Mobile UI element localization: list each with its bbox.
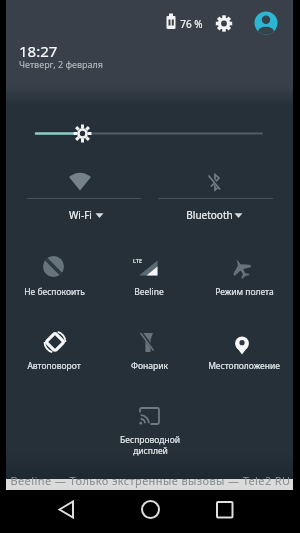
- staticText: LTE: [133, 257, 142, 264]
- staticText: Beeline: [134, 286, 164, 298]
- staticText: Режим полета: [215, 286, 274, 298]
- button[interactable]: [156, 162, 274, 224]
- button[interactable]: [197, 248, 289, 304]
- button[interactable]: [210, 8, 240, 38]
- staticText: Wi-Fi: [69, 208, 92, 222]
- staticText: Беспроводной: [120, 434, 180, 446]
- button[interactable]: [44, 494, 88, 526]
- staticText: 18:27: [19, 41, 58, 61]
- staticText: 76 %: [180, 17, 203, 31]
- staticText: Bluetooth: [186, 208, 233, 222]
- staticText: Фонарик: [131, 360, 168, 372]
- button[interactable]: [30, 118, 270, 148]
- button[interactable]: [102, 400, 194, 460]
- staticText: Не беспокоить: [24, 286, 85, 298]
- staticText: Местоположение: [208, 360, 280, 372]
- button[interactable]: [102, 325, 194, 377]
- staticText: дисплей: [133, 445, 168, 457]
- button[interactable]: [128, 494, 172, 526]
- button[interactable]: [102, 248, 194, 304]
- button[interactable]: [8, 325, 100, 377]
- button[interactable]: [25, 162, 143, 224]
- button[interactable]: [197, 325, 289, 377]
- button[interactable]: [202, 494, 246, 526]
- staticText: Четверг, 2 февраля: [19, 58, 104, 70]
- staticText: Автоповорот: [27, 360, 81, 372]
- staticText: Beeline — Только экстренные вызовы — Tel…: [10, 473, 291, 488]
- button[interactable]: [250, 8, 282, 38]
- button[interactable]: [8, 248, 100, 304]
